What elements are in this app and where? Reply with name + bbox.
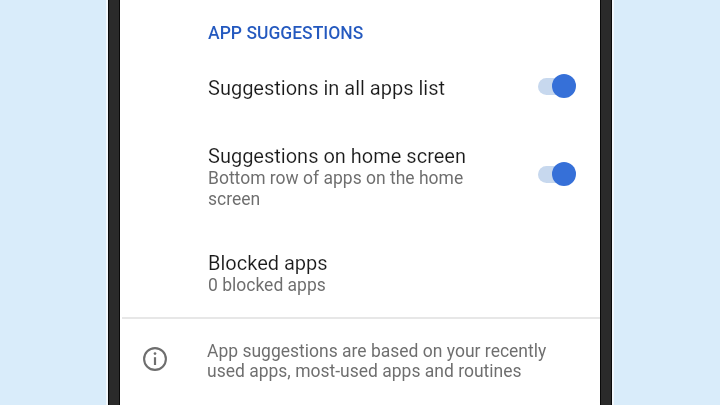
button[interactable]: Blocked apps: [120, 240, 600, 310]
button[interactable]: Suggestions in all apps list: [529, 68, 581, 104]
button[interactable]: Suggestions on home screen: [529, 156, 581, 192]
staticText: APP SUGGESTIONS: [208, 23, 688, 44]
button[interactable]: Suggestions on home screen: [120, 130, 600, 218]
staticText: 0 blocked apps: [208, 275, 688, 296]
staticText: Bottom row of apps on the home screen: [208, 168, 468, 210]
staticText: Suggestions on home screen: [208, 144, 688, 167]
staticText: App suggestions are based on your recent…: [207, 341, 552, 381]
staticText: Blocked apps: [208, 251, 688, 274]
other: Information: [143, 347, 167, 371]
button[interactable]: Suggestions in all apps list: [120, 58, 600, 122]
staticText: Suggestions in all apps list: [208, 76, 688, 99]
